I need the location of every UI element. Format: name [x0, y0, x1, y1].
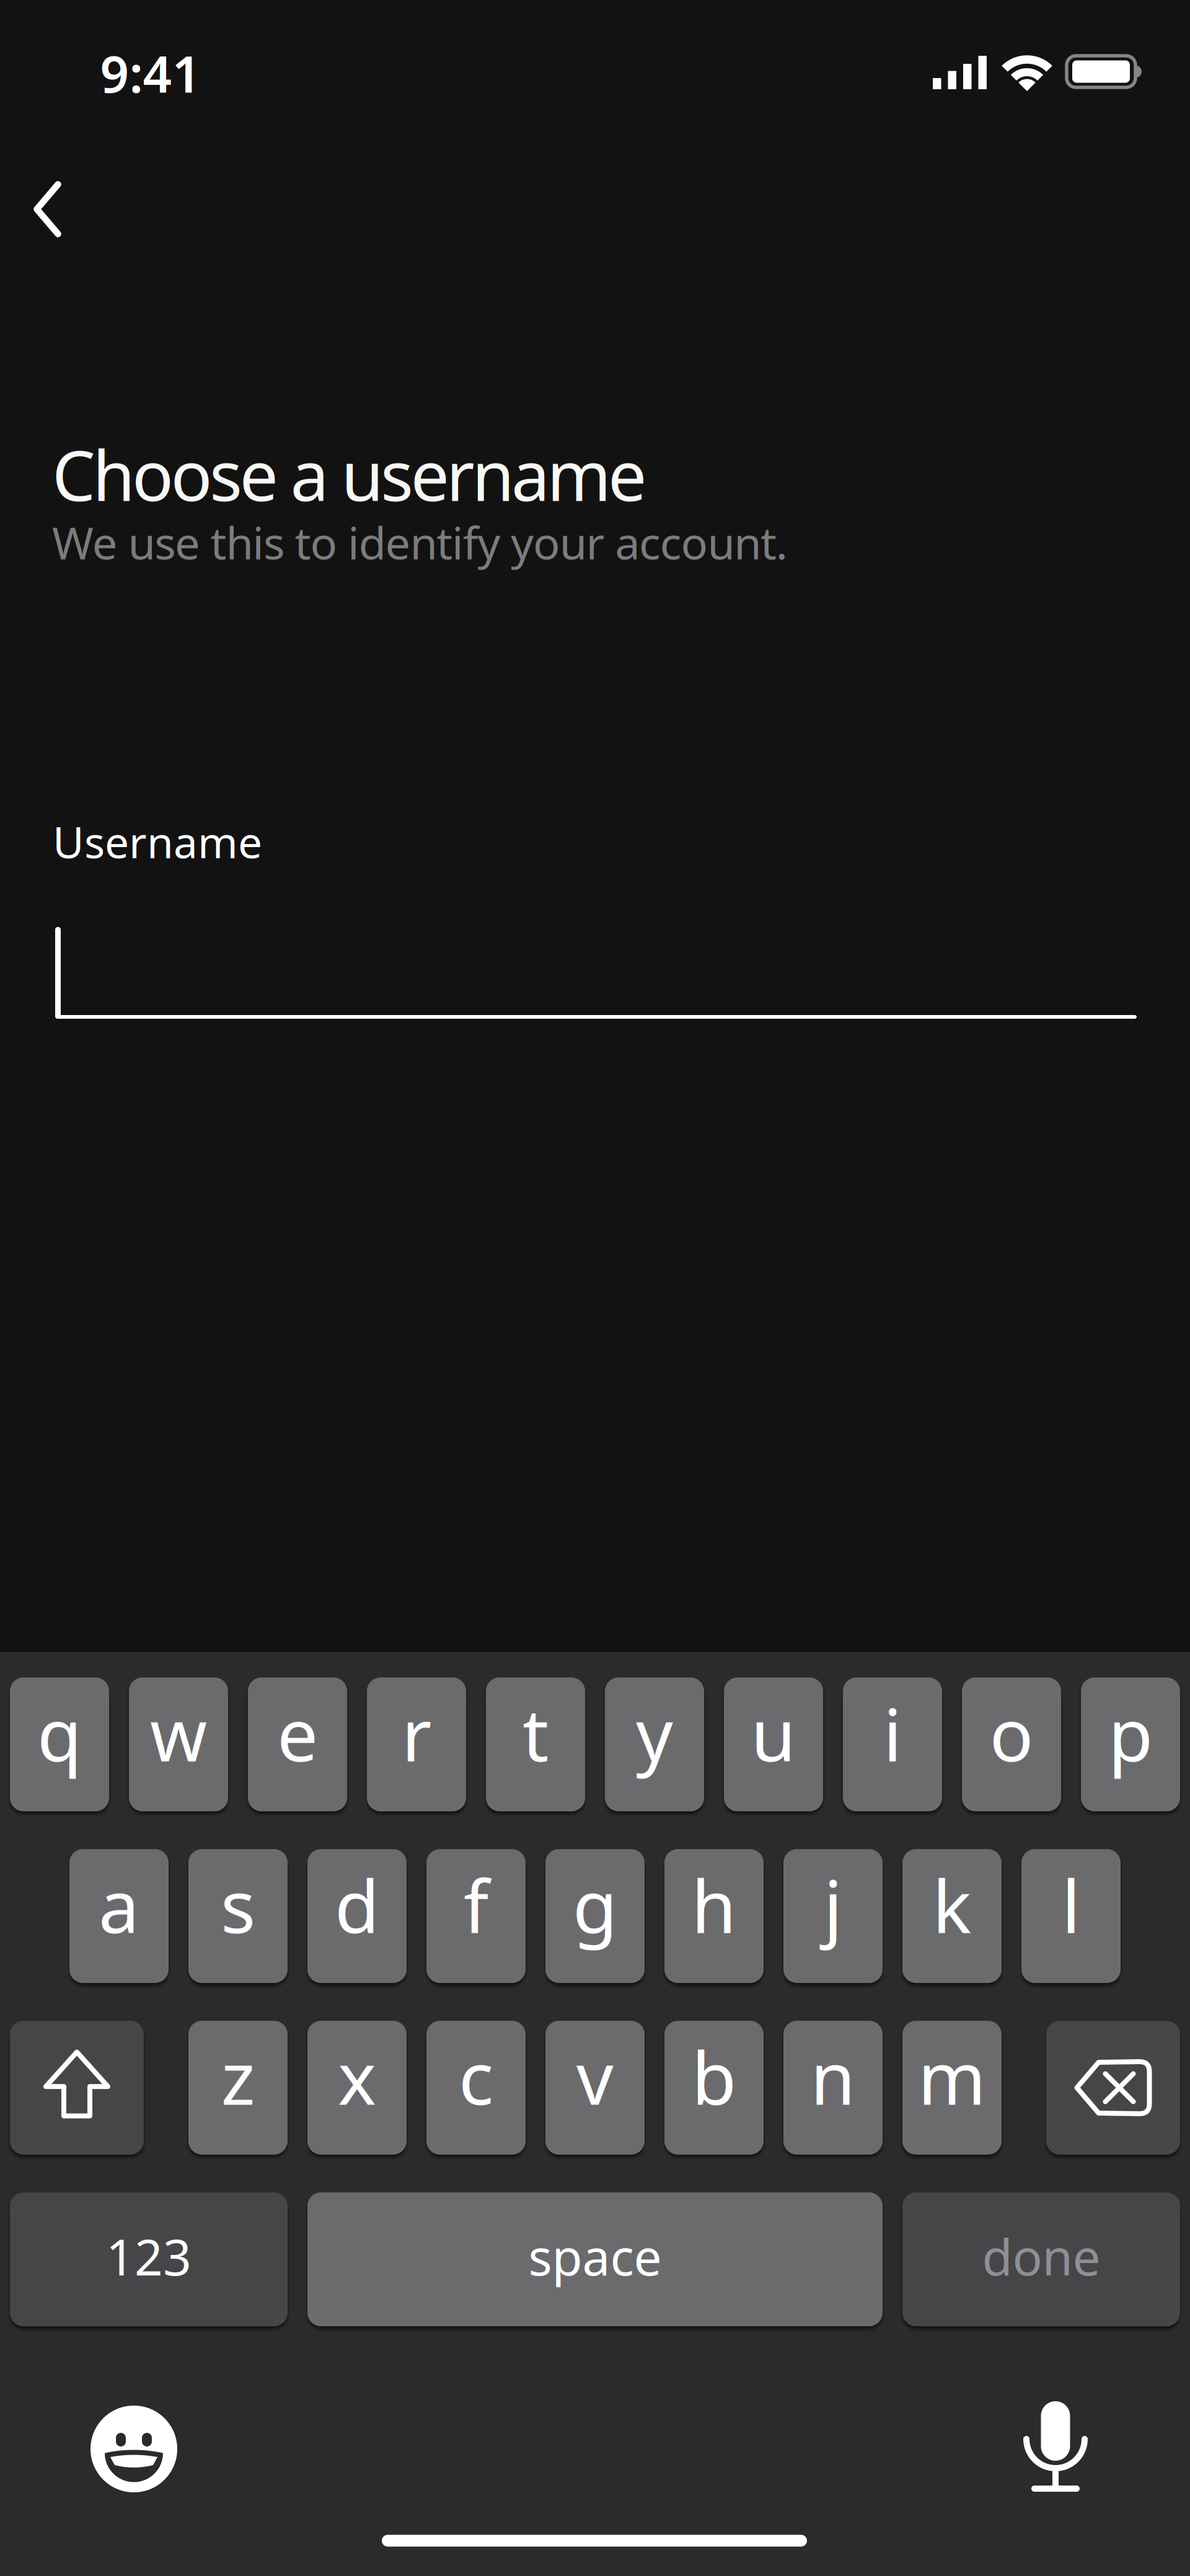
staticText: r [402, 1685, 431, 1782]
button[interactable]: Delete [1046, 2021, 1180, 2155]
button[interactable]: a [69, 1849, 169, 1983]
staticText: w [150, 1685, 207, 1782]
staticText: k [932, 1857, 972, 1953]
button[interactable]: e [248, 1677, 347, 1811]
button[interactable]: Back [18, 166, 77, 253]
staticText: g [573, 1857, 617, 1953]
staticText: f [464, 1857, 488, 1953]
staticText: p [1108, 1685, 1153, 1782]
staticText: t [522, 1685, 549, 1782]
staticText: o [989, 1685, 1034, 1782]
staticText: Choose a username [52, 429, 646, 520]
staticText: z [221, 2028, 255, 2125]
staticText: y [636, 1685, 673, 1782]
button[interactable]: q [10, 1677, 109, 1811]
button[interactable]: 123 [10, 2192, 288, 2326]
staticText: h [691, 1857, 737, 1953]
staticText: x [338, 2028, 376, 2125]
staticText: s [221, 1857, 255, 1953]
button[interactable]: b [664, 2021, 764, 2155]
button[interactable]: n [783, 2021, 883, 2155]
staticText: i [883, 1685, 902, 1782]
button[interactable]: i [843, 1677, 942, 1811]
staticText: done [982, 2223, 1100, 2289]
button[interactable]: t [486, 1677, 585, 1811]
button[interactable]: l [1021, 1849, 1121, 1983]
staticText: c [459, 2028, 493, 2125]
button[interactable]: y [605, 1677, 704, 1811]
button[interactable]: c [426, 2021, 526, 2155]
button[interactable]: g [545, 1849, 645, 1983]
staticText: space [528, 2223, 662, 2289]
staticText: 123 [106, 2223, 192, 2289]
staticText: m [918, 2028, 986, 2125]
staticText: e [277, 1685, 318, 1782]
staticText: q [37, 1685, 82, 1782]
button[interactable]: z [188, 2021, 288, 2155]
staticText: n [810, 2028, 856, 2125]
button[interactable]: w [129, 1677, 228, 1811]
button[interactable]: r [367, 1677, 466, 1811]
button[interactable]: space [307, 2192, 883, 2326]
button[interactable]: p [1081, 1677, 1180, 1811]
staticText: v [576, 2028, 614, 2125]
button[interactable]: o [962, 1677, 1061, 1811]
staticText: b [692, 2028, 736, 2125]
button[interactable]: Emoji [84, 2399, 183, 2499]
button[interactable]: d [307, 1849, 407, 1983]
staticText: a [99, 1857, 139, 1953]
staticText: Username [53, 813, 262, 870]
button[interactable]: j [783, 1849, 883, 1983]
button[interactable]: done [902, 2192, 1180, 2326]
button[interactable]: s [188, 1849, 288, 1983]
staticText: We use this to identify your account. [52, 512, 788, 572]
staticText: d [335, 1857, 379, 1953]
button[interactable]: v [545, 2021, 645, 2155]
button[interactable]: Shift [10, 2021, 144, 2155]
button[interactable]: m [902, 2021, 1002, 2155]
staticText: j [824, 1857, 842, 1953]
staticText: u [751, 1685, 796, 1782]
staticText: l [1062, 1857, 1080, 1953]
button[interactable]: f [426, 1849, 526, 1983]
button[interactable]: u [724, 1677, 823, 1811]
staticText: 9:41 [100, 40, 201, 107]
button[interactable]: x [307, 2021, 407, 2155]
button[interactable]: k [902, 1849, 1002, 1983]
button[interactable]: Username [56, 927, 1137, 1019]
button[interactable]: Dictation [1006, 2396, 1105, 2495]
button[interactable]: h [664, 1849, 764, 1983]
